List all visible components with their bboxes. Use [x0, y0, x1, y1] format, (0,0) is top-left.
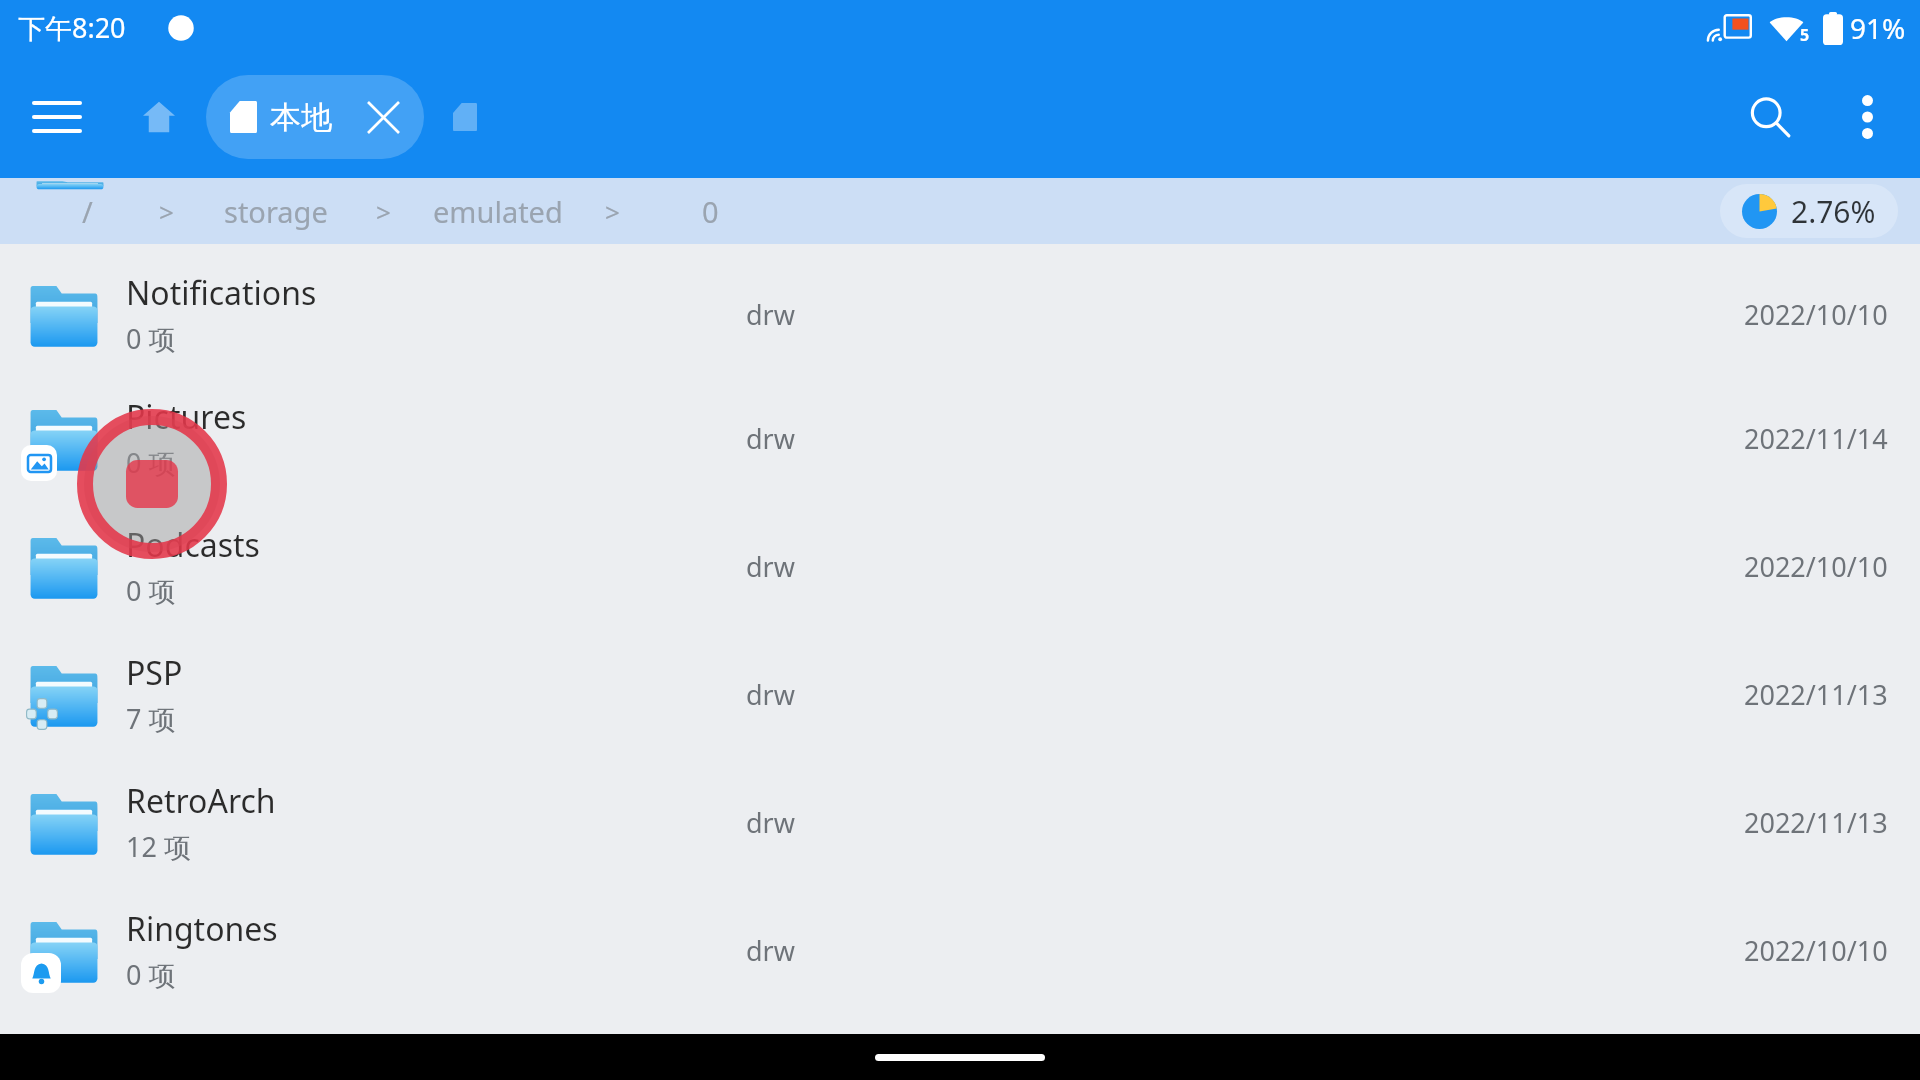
button[interactable]: Notifications — [0, 254, 1920, 374]
staticText: drw — [746, 676, 1046, 713]
staticText: Notifications — [126, 271, 317, 315]
staticText: 12 项 — [126, 828, 191, 865]
button[interactable]: More options — [1834, 84, 1900, 150]
staticText: 2022/11/14 — [1744, 420, 1888, 457]
button[interactable]: Ringtones — [0, 886, 1920, 1014]
staticText: 91% — [1850, 9, 1906, 47]
staticText: 2022/11/13 — [1744, 804, 1888, 841]
button[interactable]: Pictures — [0, 374, 1920, 502]
button[interactable]: emulated — [427, 192, 569, 231]
staticText: drw — [746, 932, 1046, 969]
staticText: Ringtones — [126, 907, 278, 951]
staticText: 5 — [1800, 24, 1810, 46]
button[interactable]: 2.76% — [1720, 184, 1898, 238]
staticText: PSP — [126, 651, 183, 695]
staticText: Pictures — [126, 395, 247, 439]
button[interactable]: Menu — [18, 78, 96, 156]
staticText: 7 项 — [126, 700, 176, 737]
button[interactable]: storage — [218, 192, 334, 231]
button[interactable]: / — [72, 192, 103, 231]
staticText: 0 项 — [126, 956, 176, 993]
button[interactable]: RetroArch — [0, 758, 1920, 886]
staticText: RetroArch — [126, 779, 276, 823]
staticText: 2022/11/13 — [1744, 676, 1888, 713]
button[interactable]: Podcasts — [0, 502, 1920, 630]
staticText: > — [376, 194, 391, 229]
staticText: 2.76% — [1791, 191, 1876, 232]
staticText: 0 项 — [126, 320, 176, 357]
button[interactable]: Storage tab — [436, 88, 494, 146]
button[interactable]: Home gesture — [875, 1054, 1045, 1061]
staticText: drw — [746, 804, 1046, 841]
button[interactable]: PSP — [0, 630, 1920, 758]
button[interactable]: Close tab — [360, 94, 406, 140]
staticText: drw — [746, 548, 1046, 585]
staticText: 0 — [702, 192, 719, 231]
staticText: drw — [746, 296, 1046, 333]
staticText: 2022/10/10 — [1744, 548, 1888, 585]
staticText: storage — [224, 192, 328, 231]
button[interactable]: Search — [1732, 79, 1808, 155]
staticText: > — [159, 194, 174, 229]
staticText: / — [82, 192, 93, 231]
staticText: > — [605, 194, 620, 229]
button[interactable]: 0 — [696, 192, 725, 231]
staticText: 0 项 — [126, 572, 176, 609]
staticText: 本地 — [270, 98, 332, 137]
staticText: emulated — [433, 192, 563, 231]
staticText: Podcasts — [126, 523, 260, 567]
button[interactable]: 本地 — [206, 75, 424, 159]
staticText: 下午8:20 — [18, 9, 126, 46]
staticText: 2022/10/10 — [1744, 932, 1888, 969]
staticText: 0 项 — [126, 444, 176, 481]
button[interactable]: Home — [128, 86, 190, 148]
staticText: drw — [746, 420, 1046, 457]
staticText: 2022/10/10 — [1744, 296, 1888, 333]
